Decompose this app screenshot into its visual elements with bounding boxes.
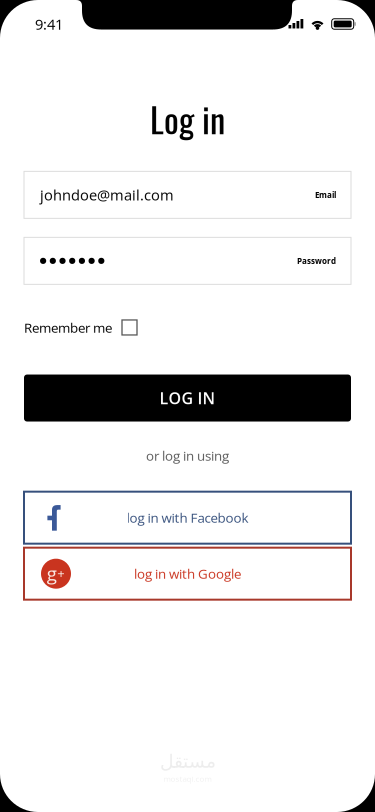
button[interactable]: log in with Facebook (24, 492, 351, 544)
staticText: 9:41 (35, 14, 63, 34)
staticText: g (47, 560, 57, 586)
staticText: مستقل (159, 750, 215, 772)
staticText: Remember me (24, 318, 112, 337)
staticText: log in with Facebook (126, 509, 248, 527)
staticText: Log in (150, 93, 225, 144)
staticText: mostaql.com (163, 773, 211, 784)
staticText: or log in using (146, 446, 229, 465)
staticText: johndoe@mail.com (40, 185, 174, 205)
button[interactable]: g (24, 548, 351, 600)
staticText: Password (297, 255, 336, 266)
button[interactable]: LOG IN (24, 374, 351, 421)
staticText: Email (315, 189, 336, 200)
staticText: LOG IN (159, 387, 215, 409)
staticText: log in with Google (134, 565, 241, 583)
staticText: + (57, 564, 65, 582)
